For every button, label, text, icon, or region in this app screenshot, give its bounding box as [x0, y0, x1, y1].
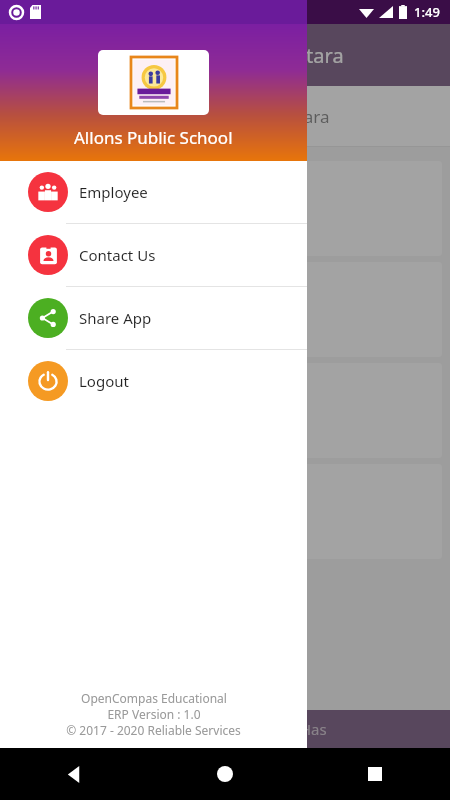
staticText: Employee [79, 182, 148, 202]
button[interactable]: Class [8, 161, 442, 256]
button[interactable]: Query [8, 262, 442, 357]
staticText: Allons Public School [74, 126, 233, 149]
button[interactable]: Share App [0, 287, 307, 349]
button[interactable]: Recents [351, 750, 399, 798]
staticText: Has [300, 719, 327, 739]
button[interactable]: Back [51, 750, 99, 798]
button[interactable]: Home [201, 750, 249, 798]
button[interactable]: Classwork [8, 363, 442, 458]
staticText: OpenCompas Educational [81, 690, 227, 706]
button[interactable]: Employee [0, 161, 307, 223]
button[interactable]: Upcoming Events [8, 464, 442, 559]
staticText: Hemetara [250, 42, 344, 69]
staticText: 1:49 [414, 3, 440, 21]
button[interactable]: Contact Us [0, 224, 307, 286]
button[interactable]: Logout [0, 350, 307, 412]
staticText: Hemetara [250, 105, 330, 128]
staticText: Logout [79, 371, 129, 391]
staticText: © 2017 - 2020 Reliable Services [66, 722, 241, 738]
staticText: Share App [79, 308, 152, 328]
staticText: Contact Us [79, 245, 156, 265]
staticText: ERP Version : 1.0 [107, 706, 201, 722]
